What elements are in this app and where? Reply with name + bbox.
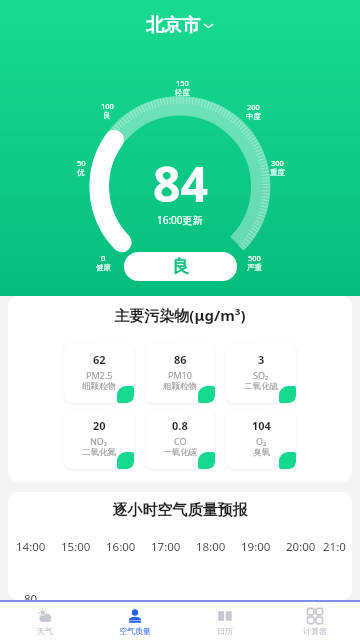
- staticText: 重度: [270, 168, 285, 177]
- staticText: 86: [174, 352, 187, 367]
- staticText: 14:00: [16, 539, 46, 555]
- staticText: PM10: [168, 369, 192, 381]
- button[interactable]: 良: [124, 252, 237, 281]
- staticText: 62: [93, 352, 106, 367]
- staticText: 天气: [37, 626, 53, 636]
- staticText: 80: [24, 591, 38, 600]
- staticText: 北京市: [146, 14, 200, 37]
- staticText: 健康: [96, 263, 111, 272]
- staticText: NO₂: [90, 435, 108, 447]
- staticText: 二氧化硫: [244, 381, 278, 392]
- staticText: 50: [77, 158, 86, 168]
- staticText: 一氧化碳: [163, 447, 197, 458]
- staticText: 优: [77, 168, 85, 177]
- staticText: 0: [101, 253, 106, 263]
- staticText: 500: [248, 253, 261, 263]
- staticText: 空气质量: [119, 626, 151, 636]
- staticText: 20:00: [286, 539, 316, 555]
- staticText: 21:00: [323, 539, 352, 555]
- staticText: 150: [176, 78, 189, 88]
- staticText: 300: [271, 158, 284, 168]
- staticText: 19:00: [241, 539, 271, 555]
- staticText: 100: [101, 101, 114, 111]
- staticText: 臭氧: [253, 447, 270, 458]
- staticText: 良: [103, 111, 111, 120]
- staticText: 中度: [246, 112, 261, 121]
- staticText: 0.8: [172, 418, 188, 433]
- button[interactable]: 计算器: [270, 602, 360, 640]
- button[interactable]: 62: [64, 343, 134, 403]
- staticText: CO: [174, 435, 187, 447]
- staticText: 200: [247, 102, 260, 112]
- staticText: O₃: [256, 435, 267, 447]
- staticText: 3: [258, 352, 265, 367]
- staticText: 18:00: [196, 539, 226, 555]
- button[interactable]: 日历: [180, 602, 270, 640]
- staticText: 104: [252, 418, 271, 433]
- staticText: 15:00: [61, 539, 91, 555]
- staticText: 轻度: [175, 88, 190, 97]
- button[interactable]: 86: [145, 343, 215, 403]
- staticText: 16:00更新: [157, 213, 203, 227]
- staticText: PM2.5: [86, 369, 113, 381]
- staticText: 良: [172, 256, 189, 277]
- staticText: 计算器: [303, 626, 327, 636]
- staticText: 84: [153, 151, 208, 216]
- button[interactable]: 20: [64, 409, 134, 469]
- button[interactable]: 空气质量: [90, 602, 180, 640]
- staticText: 主要污染物(μg/m³): [8, 305, 352, 325]
- button[interactable]: 0.8: [145, 409, 215, 469]
- button[interactable]: 104: [226, 409, 296, 469]
- button[interactable]: 3: [226, 343, 296, 403]
- staticText: 16:00: [106, 539, 136, 555]
- staticText: 粗颗粒物: [163, 381, 197, 392]
- staticText: 二氧化氮: [82, 447, 116, 458]
- staticText: 逐小时空气质量预报: [8, 501, 352, 520]
- staticText: 细颗粒物: [82, 381, 116, 392]
- staticText: 日历: [217, 626, 233, 636]
- staticText: 17:00: [151, 539, 181, 555]
- button[interactable]: 天气: [0, 602, 90, 640]
- staticText: 严重: [247, 263, 262, 272]
- staticText: SO₂: [253, 369, 269, 381]
- staticText: 20: [93, 418, 106, 433]
- button[interactable]: 北京市: [140, 10, 220, 41]
